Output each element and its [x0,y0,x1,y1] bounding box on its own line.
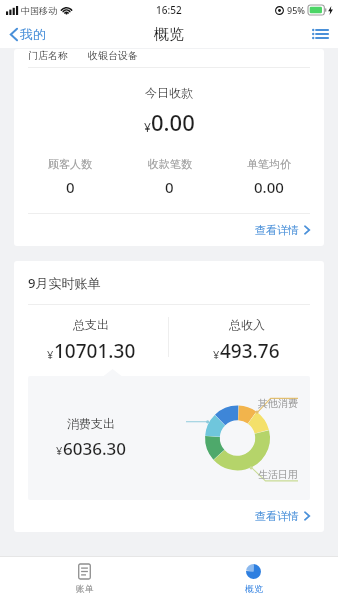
staticText: 0.00 [151,107,195,137]
staticText: 账单 [76,583,94,594]
button[interactable]: 列表 [302,22,338,46]
staticText: 我的 [20,26,46,42]
staticText: ¥ [47,347,54,362]
staticText: 顾客人数 [48,157,92,171]
staticText: 概览 [245,583,263,594]
staticText: 16:52 [156,3,182,17]
staticText: 消费支出 [67,416,115,431]
staticText: 收款笔数 [148,157,192,171]
staticText: 总收入 [229,317,265,332]
button[interactable]: 查看详情 [241,500,324,532]
button[interactable]: 9月实时账单 [14,261,324,532]
staticText: 收银台设备 [88,49,138,62]
button[interactable]: 查看详情 [241,214,324,246]
staticText: ¥ [144,119,151,135]
staticText: 总支出 [73,317,109,332]
staticText: ¥ [213,347,220,362]
staticText: ¥ [56,443,63,458]
staticText: 9月实时账单 [28,274,101,292]
staticText: 门店名称 [28,49,68,62]
staticText: 今日收款 [14,85,324,100]
staticText: 10701.30 [54,338,136,364]
staticText: 概览 [154,25,184,44]
staticText: 0.00 [254,177,284,197]
staticText: 0 [66,177,75,197]
button[interactable]: 账单 [0,556,169,600]
staticText: 其他消费 [258,397,298,410]
staticText: 0 [165,177,174,197]
staticText: 6036.30 [63,437,126,460]
button[interactable]: 概览 [169,556,338,600]
staticText: 493.76 [220,338,280,364]
staticText: 中国移动 [21,5,57,16]
button[interactable]: 门店名称 [14,49,324,246]
staticText: 95% [287,4,305,16]
staticText: 生活日用 [258,468,298,481]
button[interactable]: 我的 [0,21,56,47]
staticText: 单笔均价 [247,157,291,171]
staticText: 查看详情 [255,223,299,237]
staticText: 查看详情 [255,509,299,523]
